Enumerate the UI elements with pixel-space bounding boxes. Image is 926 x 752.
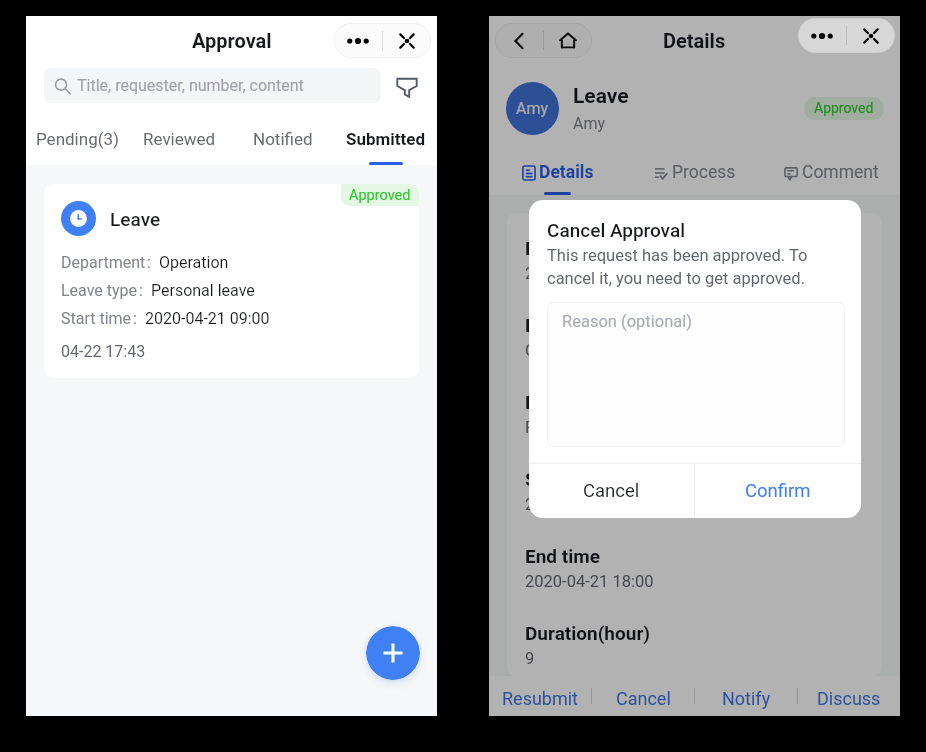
staticText: 2020042100012 [525, 264, 646, 283]
button[interactable]: Title, requester, number, content [44, 68, 381, 103]
staticText: Operation [525, 341, 597, 360]
staticText: Comment [802, 162, 879, 183]
button[interactable]: Discuss [798, 676, 900, 716]
staticText: Reason (optional) [562, 312, 693, 331]
button[interactable]: Approved [44, 184, 419, 378]
button[interactable]: Notify [695, 676, 797, 716]
staticText: 04-22 17:43 [61, 342, 146, 361]
staticText: Reviewed [143, 129, 216, 149]
button[interactable]: Resubmit [489, 676, 591, 716]
staticText: Approved [349, 187, 411, 204]
button[interactable]: More options [798, 18, 846, 53]
button[interactable]: Confirm [695, 464, 861, 518]
staticText: Discuss [817, 688, 881, 709]
button[interactable]: Close [383, 23, 431, 58]
staticText: Start time [61, 309, 132, 328]
staticText: 2020-04-21 09:00 [145, 309, 270, 328]
staticText: Approved [814, 100, 874, 116]
button[interactable]: More options [334, 23, 382, 58]
button[interactable]: Comment [763, 152, 900, 195]
staticText: Department [61, 253, 146, 272]
staticText: Resubmit [502, 688, 579, 709]
staticText: : [147, 253, 151, 272]
staticText: Leave [110, 208, 161, 230]
staticText: Cancel [616, 688, 671, 709]
staticText: Process [672, 162, 736, 183]
staticText: Confirm [745, 480, 811, 502]
button[interactable]: Home [544, 23, 592, 58]
staticText: : [133, 309, 137, 328]
button[interactable]: Cancel [529, 464, 694, 518]
staticText: Cancel Approval [547, 219, 686, 241]
staticText: Duration(hour) [525, 622, 651, 644]
button[interactable]: Back [495, 23, 543, 58]
staticText: Leave type [61, 281, 138, 300]
staticText: Amy [573, 114, 606, 133]
staticText: Notified [253, 129, 313, 149]
staticText: Pending(3) [36, 129, 119, 149]
button[interactable]: Reason (optional) [547, 302, 845, 447]
staticText: : [139, 281, 143, 300]
button[interactable]: Pending(3) [26, 120, 128, 165]
staticText: Title, requester, number, content [77, 76, 304, 95]
staticText: Start time [525, 468, 611, 490]
button[interactable]: Notified [231, 120, 334, 165]
button[interactable]: Filter [391, 70, 423, 102]
staticText: Cancel [583, 480, 640, 502]
staticText: Submitted [346, 129, 426, 149]
button[interactable]: Close [847, 18, 895, 53]
staticText: This request has been approved. To cance… [547, 246, 845, 288]
button[interactable]: Reviewed [128, 120, 231, 165]
staticText: Amy [516, 99, 549, 118]
staticText: Personal leave [151, 281, 255, 300]
staticText: Personal leave [525, 418, 633, 437]
staticText: 2020-04-21 09:00 [525, 495, 654, 514]
staticText: End time [525, 545, 600, 567]
staticText: 9 [525, 649, 535, 668]
staticText: Leave [573, 84, 629, 109]
staticText: Details [663, 29, 726, 52]
staticText: Approval [192, 29, 272, 52]
button[interactable]: Submitted [334, 120, 437, 165]
staticText: 2020-04-21 18:00 [525, 572, 654, 591]
staticText: Request number [525, 237, 666, 259]
staticText: Operation [159, 253, 229, 272]
staticText: Notify [722, 688, 771, 709]
button[interactable]: Cancel [592, 676, 694, 716]
staticText: Leave type [525, 391, 618, 413]
button[interactable]: Process [626, 152, 763, 195]
button[interactable]: Details [489, 152, 626, 195]
button[interactable]: Add new request [366, 626, 420, 680]
staticText: Department [525, 314, 627, 336]
staticText: Details [539, 162, 594, 183]
